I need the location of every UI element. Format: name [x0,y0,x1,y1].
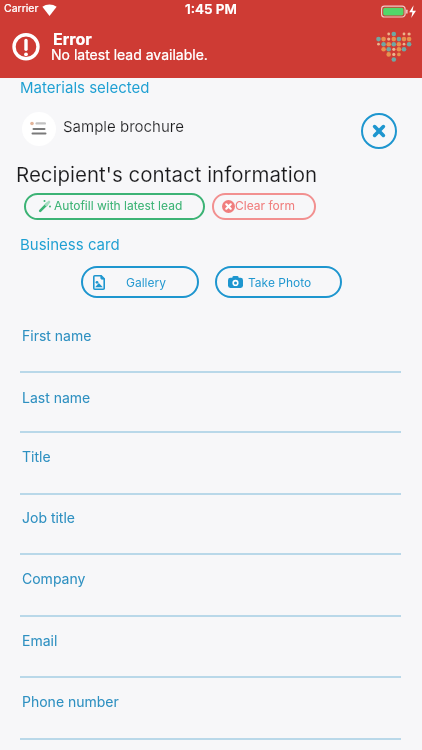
button[interactable]: Take Photo [215,266,342,298]
staticText: Take Photo [248,275,312,290]
button[interactable]: Email [20,632,401,678]
staticText: First name [22,327,92,344]
button[interactable]: Job title [20,509,401,555]
staticText: Gallery [126,275,166,290]
button[interactable]: Last name [20,389,401,433]
staticText: Title [22,448,51,465]
staticText: Last name [22,389,91,406]
staticText: Sample brochure [63,117,184,135]
button[interactable]: Gallery [81,266,199,298]
button[interactable] [361,113,397,149]
staticText: No latest lead available. [51,46,208,63]
staticText: Carrier [4,2,39,15]
button[interactable]: Company [20,570,401,617]
button[interactable]: Phone number [20,693,401,740]
staticText: Job title [22,509,75,526]
button[interactable]: Sample brochure [0,103,422,155]
staticText: 1:45 PM [0,1,422,17]
staticText: Error [53,29,92,48]
button[interactable]: Autofill with latest lead [24,193,205,220]
staticText: Email [22,632,58,649]
staticText: Autofill with latest lead [54,198,183,213]
button[interactable]: Clear form [212,193,316,220]
staticText: Business card [20,235,120,253]
button[interactable]: Title [20,448,401,495]
button[interactable]: First name [20,327,401,373]
staticText: Materials selected [20,78,150,96]
staticText: Clear form [235,198,295,213]
staticText: Recipient's contact information [16,162,318,187]
staticText: Phone number [22,693,119,710]
staticText: Company [22,570,86,587]
